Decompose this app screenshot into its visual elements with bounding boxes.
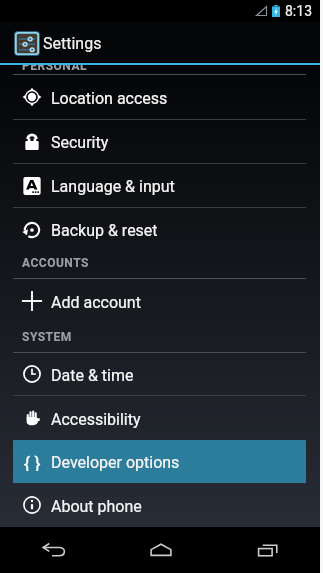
button[interactable]: { } xyxy=(13,440,306,483)
button[interactable]: Settings xyxy=(0,22,323,65)
button[interactable]: Language & input xyxy=(13,164,306,207)
button[interactable]: Backup & reset xyxy=(13,208,306,251)
button[interactable]: Back xyxy=(0,527,107,573)
button[interactable]: Date & time xyxy=(13,353,306,395)
button[interactable]: Add account xyxy=(13,279,306,323)
staticText: 8:13 xyxy=(285,3,312,19)
staticText: Add account xyxy=(51,293,141,312)
button[interactable]: Accessibility xyxy=(13,396,306,440)
staticText: Developer options xyxy=(51,453,180,472)
button[interactable]: About phone xyxy=(13,483,306,527)
staticText: ACCOUNTS xyxy=(22,256,89,270)
button[interactable]: Home xyxy=(107,527,215,573)
staticText: SYSTEM xyxy=(22,330,72,344)
staticText: Accessibility xyxy=(51,410,141,429)
button[interactable]: Security xyxy=(13,120,306,163)
staticText: Date & time xyxy=(51,366,134,385)
staticText: Security xyxy=(51,133,109,152)
staticText: Location access xyxy=(51,89,168,108)
staticText: About phone xyxy=(51,497,142,516)
staticText: Settings xyxy=(43,34,102,53)
button[interactable]: Recent apps xyxy=(215,527,323,573)
staticText: Language & input xyxy=(51,177,175,196)
staticText: { } xyxy=(24,453,41,471)
staticText: Backup & reset xyxy=(51,221,158,240)
button[interactable]: Location access xyxy=(13,75,306,119)
staticText: PERSONAL xyxy=(22,65,87,73)
